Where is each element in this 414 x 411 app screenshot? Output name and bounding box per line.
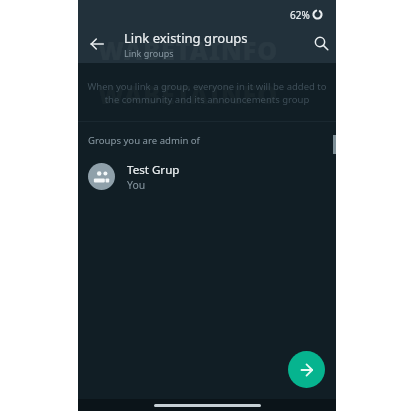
button[interactable]: Test Grup (78, 155, 336, 198)
staticText: WABETAINFO (98, 77, 279, 111)
staticText: WABETAINFO (98, 33, 279, 67)
staticText: 62% (290, 8, 310, 22)
staticText: When you link a group, everyone in it wi… (86, 80, 328, 106)
button[interactable]: Next (288, 351, 325, 388)
staticText: You (127, 178, 146, 192)
staticText: Link groups (124, 47, 174, 59)
staticText: Test Grup (127, 162, 180, 178)
button[interactable]: Back (83, 30, 111, 58)
button[interactable]: Search (307, 29, 335, 57)
staticText: Link existing groups (124, 29, 248, 47)
staticText: Groups you are admin of (88, 134, 200, 147)
